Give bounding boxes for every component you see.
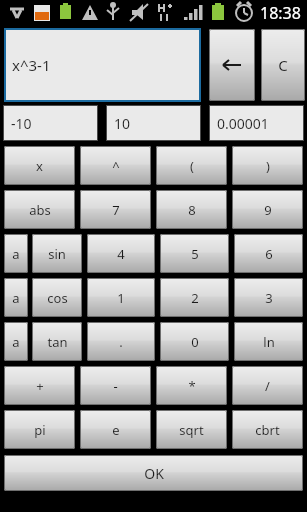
button[interactable]: .	[87, 322, 155, 361]
button[interactable]: 5	[160, 234, 229, 273]
staticText: abs	[29, 201, 51, 219]
staticText: 6	[265, 245, 273, 263]
staticText: cos	[47, 289, 68, 307]
staticText: cbrt	[255, 421, 280, 439]
staticText: 18:38	[260, 2, 301, 24]
staticText: -	[113, 377, 118, 395]
staticText: )	[266, 157, 270, 175]
button[interactable]: ln	[234, 322, 303, 361]
button[interactable]: x	[4, 146, 75, 185]
button[interactable]: /	[232, 366, 303, 405]
staticText: x^3-1	[12, 55, 51, 75]
staticText: 3	[265, 289, 273, 307]
staticText: tan	[47, 333, 68, 351]
staticText: 7	[112, 201, 120, 219]
button[interactable]: 4	[87, 234, 155, 273]
staticText: x	[36, 157, 43, 175]
button[interactable]: cbrt	[232, 410, 303, 449]
staticText: e	[112, 421, 120, 439]
button[interactable]: tan	[32, 322, 82, 361]
staticText: 4	[117, 245, 125, 263]
button[interactable]: x^3-1	[4, 28, 201, 102]
button[interactable]: 0.00001	[209, 105, 304, 141]
staticText: 5	[191, 245, 199, 263]
button[interactable]: 0	[160, 322, 229, 361]
staticText: OK	[144, 464, 164, 483]
button[interactable]: 7	[80, 190, 151, 229]
button[interactable]: Backspace	[209, 29, 255, 101]
staticText: sin	[48, 245, 66, 263]
button[interactable]: (	[156, 146, 227, 185]
button[interactable]: *	[156, 366, 227, 405]
staticText: (	[190, 157, 194, 175]
staticText: a	[12, 289, 20, 307]
button[interactable]: a	[4, 278, 28, 317]
button[interactable]: sqrt	[156, 410, 227, 449]
button[interactable]: pi	[4, 410, 75, 449]
staticText: .	[119, 333, 123, 351]
staticText: -10	[11, 114, 32, 133]
staticText: 2	[191, 289, 199, 307]
button[interactable]: sin	[32, 234, 82, 273]
button[interactable]: abs	[4, 190, 75, 229]
staticText: 10	[114, 114, 131, 133]
button[interactable]: OK	[4, 455, 303, 491]
button[interactable]: 2	[160, 278, 229, 317]
staticText: 0	[191, 333, 199, 351]
staticText: +	[36, 377, 44, 395]
staticText: 8	[188, 201, 196, 219]
button[interactable]: C	[261, 29, 305, 101]
button[interactable]: a	[4, 234, 28, 273]
button[interactable]: e	[80, 410, 151, 449]
staticText: *	[188, 377, 196, 395]
button[interactable]: 8	[156, 190, 227, 229]
staticText: 0.00001	[217, 114, 269, 133]
button[interactable]: 3	[234, 278, 303, 317]
staticText: ^	[112, 157, 120, 175]
staticText: ln	[263, 333, 275, 351]
button[interactable]: 10	[106, 105, 201, 141]
button[interactable]: -	[80, 366, 151, 405]
staticText: sqrt	[179, 421, 204, 439]
button[interactable]: -10	[3, 105, 98, 141]
staticText: pi	[34, 421, 46, 439]
button[interactable]: ^	[80, 146, 151, 185]
staticText: 1	[117, 289, 125, 307]
button[interactable]: cos	[32, 278, 82, 317]
staticText: C	[278, 55, 288, 75]
button[interactable]: a	[4, 322, 28, 361]
button[interactable]: 6	[234, 234, 303, 273]
button[interactable]: 9	[232, 190, 303, 229]
button[interactable]: +	[4, 366, 75, 405]
staticText: /	[265, 377, 270, 395]
staticText: a	[12, 245, 20, 263]
staticText: a	[12, 333, 20, 351]
staticText: 9	[264, 201, 272, 219]
button[interactable]: 1	[87, 278, 155, 317]
button[interactable]: )	[232, 146, 303, 185]
